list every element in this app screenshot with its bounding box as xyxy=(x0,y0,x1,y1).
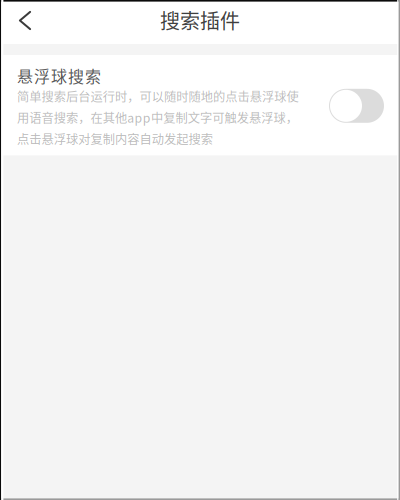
button[interactable]: 悬浮球搜索 xyxy=(329,89,384,123)
staticText: 用语音搜索，在其他app中复制文字可触发悬浮球， xyxy=(17,108,298,126)
button[interactable]: 返回 xyxy=(0,0,44,44)
staticText: 悬浮球搜索 xyxy=(17,64,101,87)
staticText: 简单搜索后台运行时，可以随时随地的点击悬浮球使 xyxy=(17,87,298,105)
staticText: 搜索插件 xyxy=(160,5,240,34)
staticText: 点击悬浮球对复制内容自动发起搜索 xyxy=(17,130,213,148)
